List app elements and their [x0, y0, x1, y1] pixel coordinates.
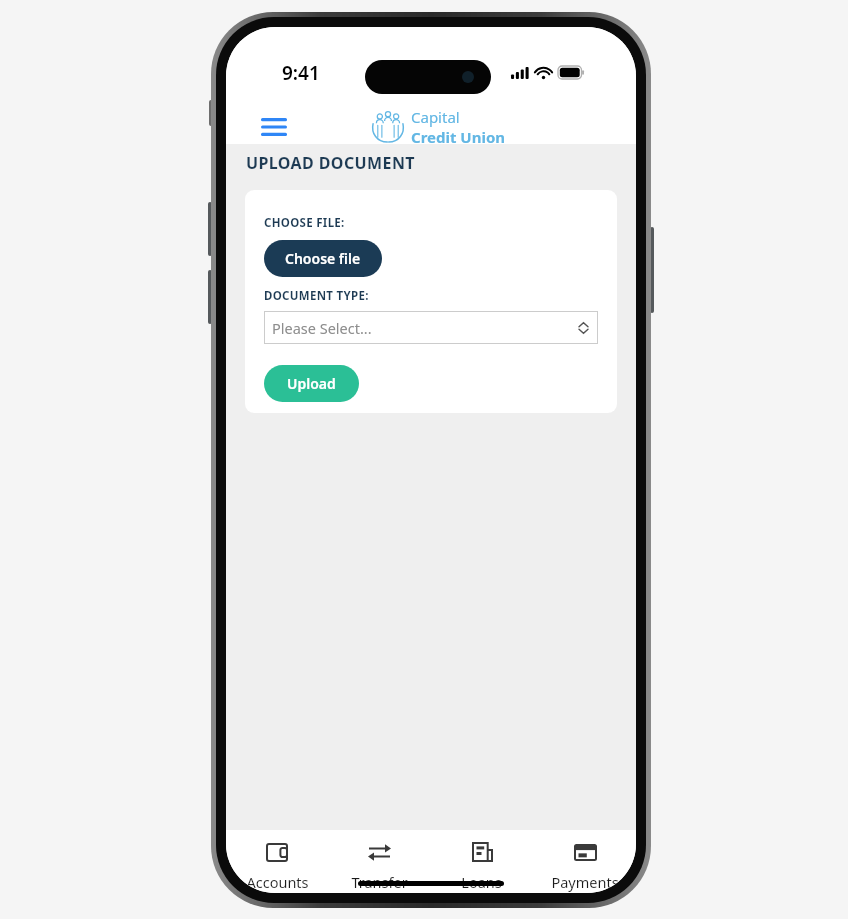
staticText: Choose file — [285, 249, 361, 268]
button[interactable]: Choose file — [264, 240, 382, 277]
staticText: DOCUMENT TYPE: — [264, 288, 369, 304]
button[interactable]: Please Select... — [264, 311, 598, 344]
button[interactable]: Transfer — [328, 830, 430, 893]
staticText: Accounts — [246, 872, 309, 892]
button[interactable]: Upload — [264, 365, 359, 402]
staticText: Please Select... — [272, 318, 372, 338]
button[interactable]: Accounts — [226, 830, 328, 893]
staticText: Upload — [287, 374, 336, 393]
staticText: Transfer — [351, 872, 408, 892]
button[interactable]: Capital — [371, 107, 506, 147]
staticText: CHOOSE FILE: — [264, 215, 345, 231]
staticText: UPLOAD DOCUMENT — [246, 152, 415, 174]
button[interactable]: Loans — [430, 830, 533, 893]
staticText: Loans — [461, 872, 502, 892]
staticText: Capital — [411, 107, 460, 127]
staticText: Payments — [551, 872, 619, 892]
staticText: Credit Union — [411, 127, 506, 147]
staticText: 9:41 — [282, 60, 320, 86]
button[interactable]: Menu — [254, 110, 294, 144]
button[interactable]: Payments — [533, 830, 636, 893]
